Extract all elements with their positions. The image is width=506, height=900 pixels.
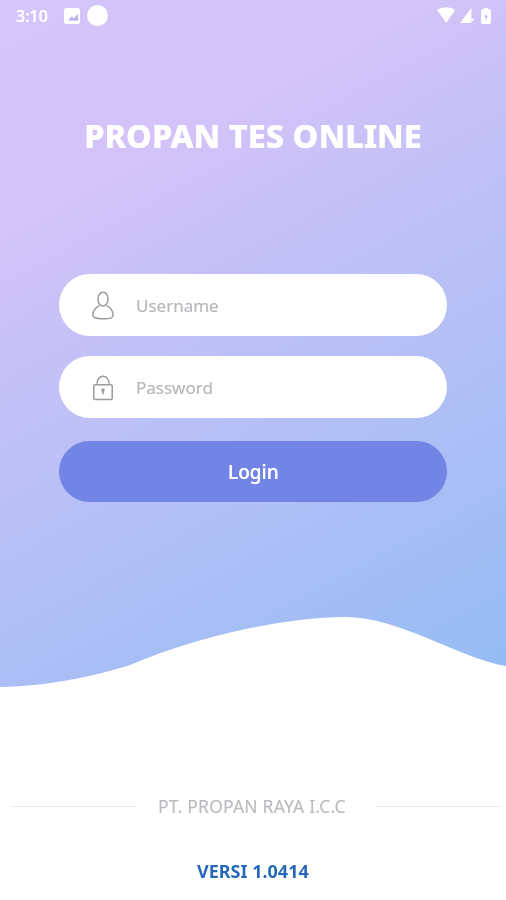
staticText: 3:10 [16, 5, 48, 27]
button[interactable]: Password [59, 356, 447, 418]
staticText: Login [228, 459, 279, 485]
staticText: Username [136, 294, 219, 317]
button[interactable]: Username [59, 274, 447, 336]
staticText: PT. PROPAN RAYA I.C.C [158, 794, 346, 818]
staticText: VERSI 1.0414 [197, 859, 309, 884]
staticText: PROPAN TES ONLINE [0, 113, 506, 157]
staticText: Password [136, 376, 213, 399]
button[interactable]: Login [59, 441, 447, 502]
